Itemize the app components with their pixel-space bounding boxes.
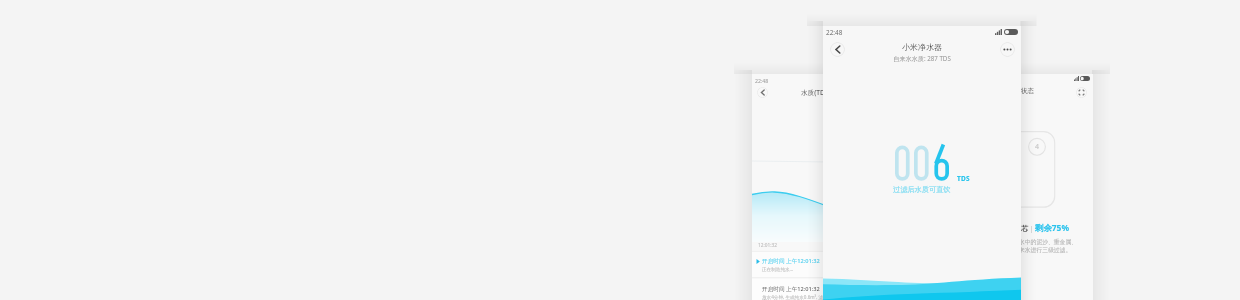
staticText: 放水4分钟, 生成纯水0.6m³, 滤 — [762, 294, 824, 300]
staticText: 水质(TDS) — [801, 88, 831, 97]
staticText: 剩余75% — [1035, 222, 1069, 233]
staticText: 状态 — [1021, 87, 1035, 95]
staticText: 22:48 — [755, 77, 769, 84]
staticText: 12:01:32 — [758, 242, 778, 249]
staticText: 4 — [1035, 142, 1040, 152]
button[interactable]: 开启时间 上午12:01:32 — [752, 279, 831, 300]
staticText: 来水进行三级过滤。 — [1019, 246, 1072, 253]
staticText: 开启时间 上午12:01:32 — [762, 257, 820, 265]
staticText: 芯 — [1021, 224, 1029, 233]
staticText: 正在制造纯水… — [762, 266, 794, 272]
button[interactable]: Scan QR code — [1076, 87, 1087, 98]
staticText: 过滤后水质可直饮 — [893, 185, 951, 194]
staticText: 自来水水质: 287 TDS — [893, 54, 951, 62]
button[interactable]: Back — [830, 42, 845, 57]
button[interactable]: Back — [757, 87, 768, 98]
button[interactable]: More options — [1000, 42, 1015, 57]
staticText: 小米净水器 — [902, 42, 942, 52]
button[interactable]: 开启时间 上午12:01:32 — [752, 251, 831, 278]
staticText: TDS — [957, 174, 970, 183]
staticText: 水中的泥沙、重金属、 — [1019, 238, 1077, 245]
staticText: 22:48 — [826, 28, 843, 37]
staticText: 开启时间 上午12:01:32 — [762, 285, 820, 293]
